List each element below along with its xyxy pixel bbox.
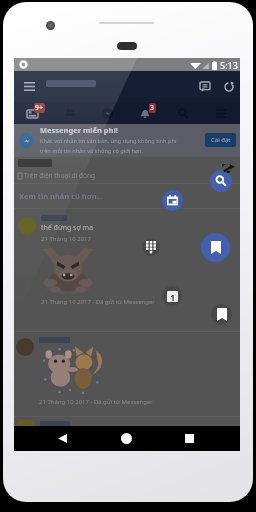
staticText: 21 Tháng 10 2017 · Đã gửi từ Messenger [39, 398, 153, 406]
staticText: Khác với nhắn tin văn bản, ứng dụng khôn… [40, 137, 177, 145]
staticText: 1 [170, 291, 176, 302]
staticText: 5:13 [220, 59, 238, 71]
button[interactable]: 21 Tháng 10 2017 · Đã gửi từ Messenger [14, 332, 240, 416]
button[interactable]: Messenger [88, 102, 126, 124]
button[interactable]: Cài đặt [205, 133, 236, 147]
staticText: Messenger miễn phí! [40, 125, 118, 135]
other: Share [222, 164, 235, 173]
button[interactable]: thế đừng sợ ma [14, 209, 240, 331]
button[interactable]: Xem tin nhắn cũ hơn... [14, 184, 240, 208]
button[interactable]: Home [115, 426, 137, 451]
staticText: trên mỗi tin nhắn và không có giới hạn. [40, 147, 144, 155]
staticText: 3 [150, 103, 155, 113]
staticText: 21 Tháng 10 2017 [41, 235, 91, 243]
staticText: Xem tin nhắn cũ hơn... [19, 191, 104, 201]
button[interactable]: Search [210, 170, 232, 192]
button[interactable]: Refresh [217, 71, 240, 102]
button[interactable]: Dial pad [142, 238, 160, 256]
button[interactable]: Open navigation menu [18, 71, 40, 102]
staticText: 9+ [35, 103, 44, 113]
button[interactable]: Recent apps [178, 426, 200, 451]
button[interactable]: Bookmark [211, 304, 232, 325]
button[interactable]: Messages [193, 71, 216, 102]
staticText: 21 Tháng 10 2017 · Đã gửi từ Messenger [41, 298, 155, 306]
button[interactable]: Unread count [162, 286, 182, 306]
button[interactable]: Saved [201, 233, 230, 262]
button[interactable] [14, 417, 240, 426]
button[interactable]: Notifications [126, 102, 164, 124]
button[interactable]: News Feed [14, 102, 51, 124]
button[interactable]: Back [51, 426, 73, 451]
staticText: thế đừng sợ ma [41, 223, 94, 233]
staticText: Cài đặt [211, 136, 231, 144]
staticText: Trên điện thoại di động [24, 171, 95, 180]
button[interactable]: Calendar [162, 190, 183, 211]
